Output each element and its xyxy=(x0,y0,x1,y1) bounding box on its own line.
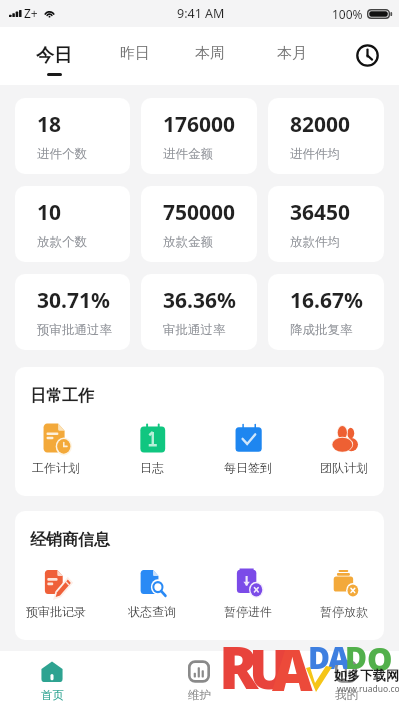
staticText: 18 xyxy=(37,110,62,139)
staticText: 状态查询 xyxy=(128,604,176,619)
button[interactable]: 首页 xyxy=(17,661,87,702)
button[interactable]: 176000 xyxy=(141,98,257,174)
button[interactable]: 36450 xyxy=(268,186,384,262)
staticText: 进件个数 xyxy=(37,146,87,162)
button[interactable]: 30.71% xyxy=(15,274,130,350)
staticText: 团队计划 xyxy=(320,460,368,475)
staticText: A xyxy=(328,637,350,678)
button[interactable]: History xyxy=(345,33,389,77)
staticText: 维护 xyxy=(188,688,211,702)
staticText: 我的 xyxy=(335,688,358,702)
staticText: 首页 xyxy=(41,688,64,702)
staticText: 36.36% xyxy=(163,286,236,315)
staticText: 今日 xyxy=(36,44,72,67)
staticText: 100% xyxy=(332,6,363,22)
button[interactable]: 暂停进件 xyxy=(205,567,291,619)
button[interactable]: 18 xyxy=(15,98,130,174)
button[interactable]: 本周 xyxy=(178,27,242,85)
staticText: 日志 xyxy=(140,460,164,475)
staticText: 预审批通过率 xyxy=(37,322,112,338)
button[interactable]: 团队计划 xyxy=(301,423,384,475)
staticText: 暂停进件 xyxy=(224,604,272,619)
staticText: 9:41 AM xyxy=(177,5,225,22)
staticText: 工作计划 xyxy=(32,460,80,475)
staticText: O xyxy=(367,637,393,681)
button[interactable]: 我的 xyxy=(311,661,381,702)
staticText: 暂停放款 xyxy=(320,604,368,619)
staticText: 日常工作 xyxy=(30,386,94,406)
button[interactable]: 预审批记录 xyxy=(15,567,99,619)
button[interactable]: 状态查询 xyxy=(109,567,195,619)
staticText: 36450 xyxy=(290,198,351,227)
button[interactable]: 本月 xyxy=(260,27,324,85)
staticText: 放款个数 xyxy=(37,234,87,250)
staticText: 昨日 xyxy=(120,44,150,63)
staticText: Z+ xyxy=(24,5,38,21)
button[interactable]: 每日签到 xyxy=(205,423,291,475)
button[interactable]: 工作计划 xyxy=(15,423,99,475)
staticText: 如多下载网 xyxy=(334,667,399,683)
button[interactable]: 日志 xyxy=(109,423,195,475)
staticText: 本月 xyxy=(277,44,307,63)
staticText: 30.71% xyxy=(37,286,110,315)
staticText: 176000 xyxy=(163,110,236,139)
button[interactable]: 暂停放款 xyxy=(301,567,384,619)
button[interactable]: 750000 xyxy=(141,186,257,262)
button[interactable]: 16.67% xyxy=(268,274,384,350)
staticText: 进件件均 xyxy=(290,146,340,162)
staticText: 放款件均 xyxy=(290,234,340,250)
staticText: U xyxy=(249,631,290,705)
staticText: 10 xyxy=(37,198,62,227)
button[interactable]: 36.36% xyxy=(141,274,257,350)
staticText: 进件金额 xyxy=(163,146,213,162)
staticText: 82000 xyxy=(290,110,351,139)
staticText: D xyxy=(345,637,368,678)
staticText: 经销商信息 xyxy=(30,530,110,550)
staticText: D xyxy=(308,637,331,678)
staticText: 审批通过率 xyxy=(163,322,226,338)
staticText: 750000 xyxy=(163,198,236,227)
button[interactable]: 今日 xyxy=(22,27,86,85)
staticText: 16.67% xyxy=(290,286,363,315)
staticText: 放款金额 xyxy=(163,234,213,250)
button[interactable]: 昨日 xyxy=(103,27,167,85)
button[interactable]: 维护 xyxy=(164,661,234,702)
staticText: R xyxy=(219,627,259,706)
staticText: 降成批复率 xyxy=(290,322,353,338)
staticText: A xyxy=(272,631,313,707)
staticText: www.ruaduo.com xyxy=(337,683,399,695)
staticText: 预审批记录 xyxy=(26,604,86,619)
staticText: 每日签到 xyxy=(224,460,272,475)
button[interactable]: 82000 xyxy=(268,98,384,174)
staticText: 本周 xyxy=(195,44,225,63)
button[interactable]: 10 xyxy=(15,186,130,262)
